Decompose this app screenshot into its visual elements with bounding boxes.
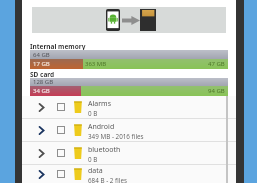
staticText: 0 B bbox=[88, 155, 98, 164]
staticText: 128 GB bbox=[33, 78, 54, 86]
staticText: 349 MB - 2016 files bbox=[88, 132, 144, 141]
staticText: 363 MB bbox=[85, 60, 107, 68]
staticText: 64 GB bbox=[33, 51, 50, 59]
staticText: data bbox=[88, 166, 103, 176]
staticText: bluetooth bbox=[88, 145, 121, 155]
staticText: Alarms bbox=[88, 99, 111, 109]
button[interactable]: Expand folder bbox=[22, 142, 236, 164]
button[interactable]: Expand folder bbox=[37, 124, 46, 137]
staticText: Internal memory bbox=[30, 42, 86, 50]
staticText: 47 GB bbox=[208, 60, 225, 68]
button[interactable]: Select folder bbox=[57, 170, 65, 178]
staticText: 94 GB bbox=[208, 87, 225, 95]
button[interactable]: Select folder bbox=[57, 103, 65, 111]
staticText: SD card bbox=[30, 70, 55, 78]
staticText: Android bbox=[88, 122, 115, 132]
button[interactable]: Expand folder bbox=[37, 168, 46, 181]
button[interactable]: Expand folder bbox=[22, 119, 236, 141]
staticText: 34 GB bbox=[33, 87, 50, 95]
staticText: 684 B - 2 files bbox=[88, 176, 128, 183]
staticText: 0 B bbox=[88, 109, 98, 118]
button[interactable]: Move files to SD card bbox=[32, 7, 226, 33]
staticText: 17 GB bbox=[33, 60, 50, 68]
button[interactable]: Select folder bbox=[57, 149, 65, 157]
button[interactable]: Expand folder bbox=[37, 147, 46, 160]
button[interactable]: Expand folder bbox=[22, 165, 236, 183]
button[interactable]: Expand folder bbox=[37, 101, 46, 114]
button[interactable]: Expand folder bbox=[22, 96, 236, 118]
button[interactable]: Select folder bbox=[57, 126, 65, 134]
